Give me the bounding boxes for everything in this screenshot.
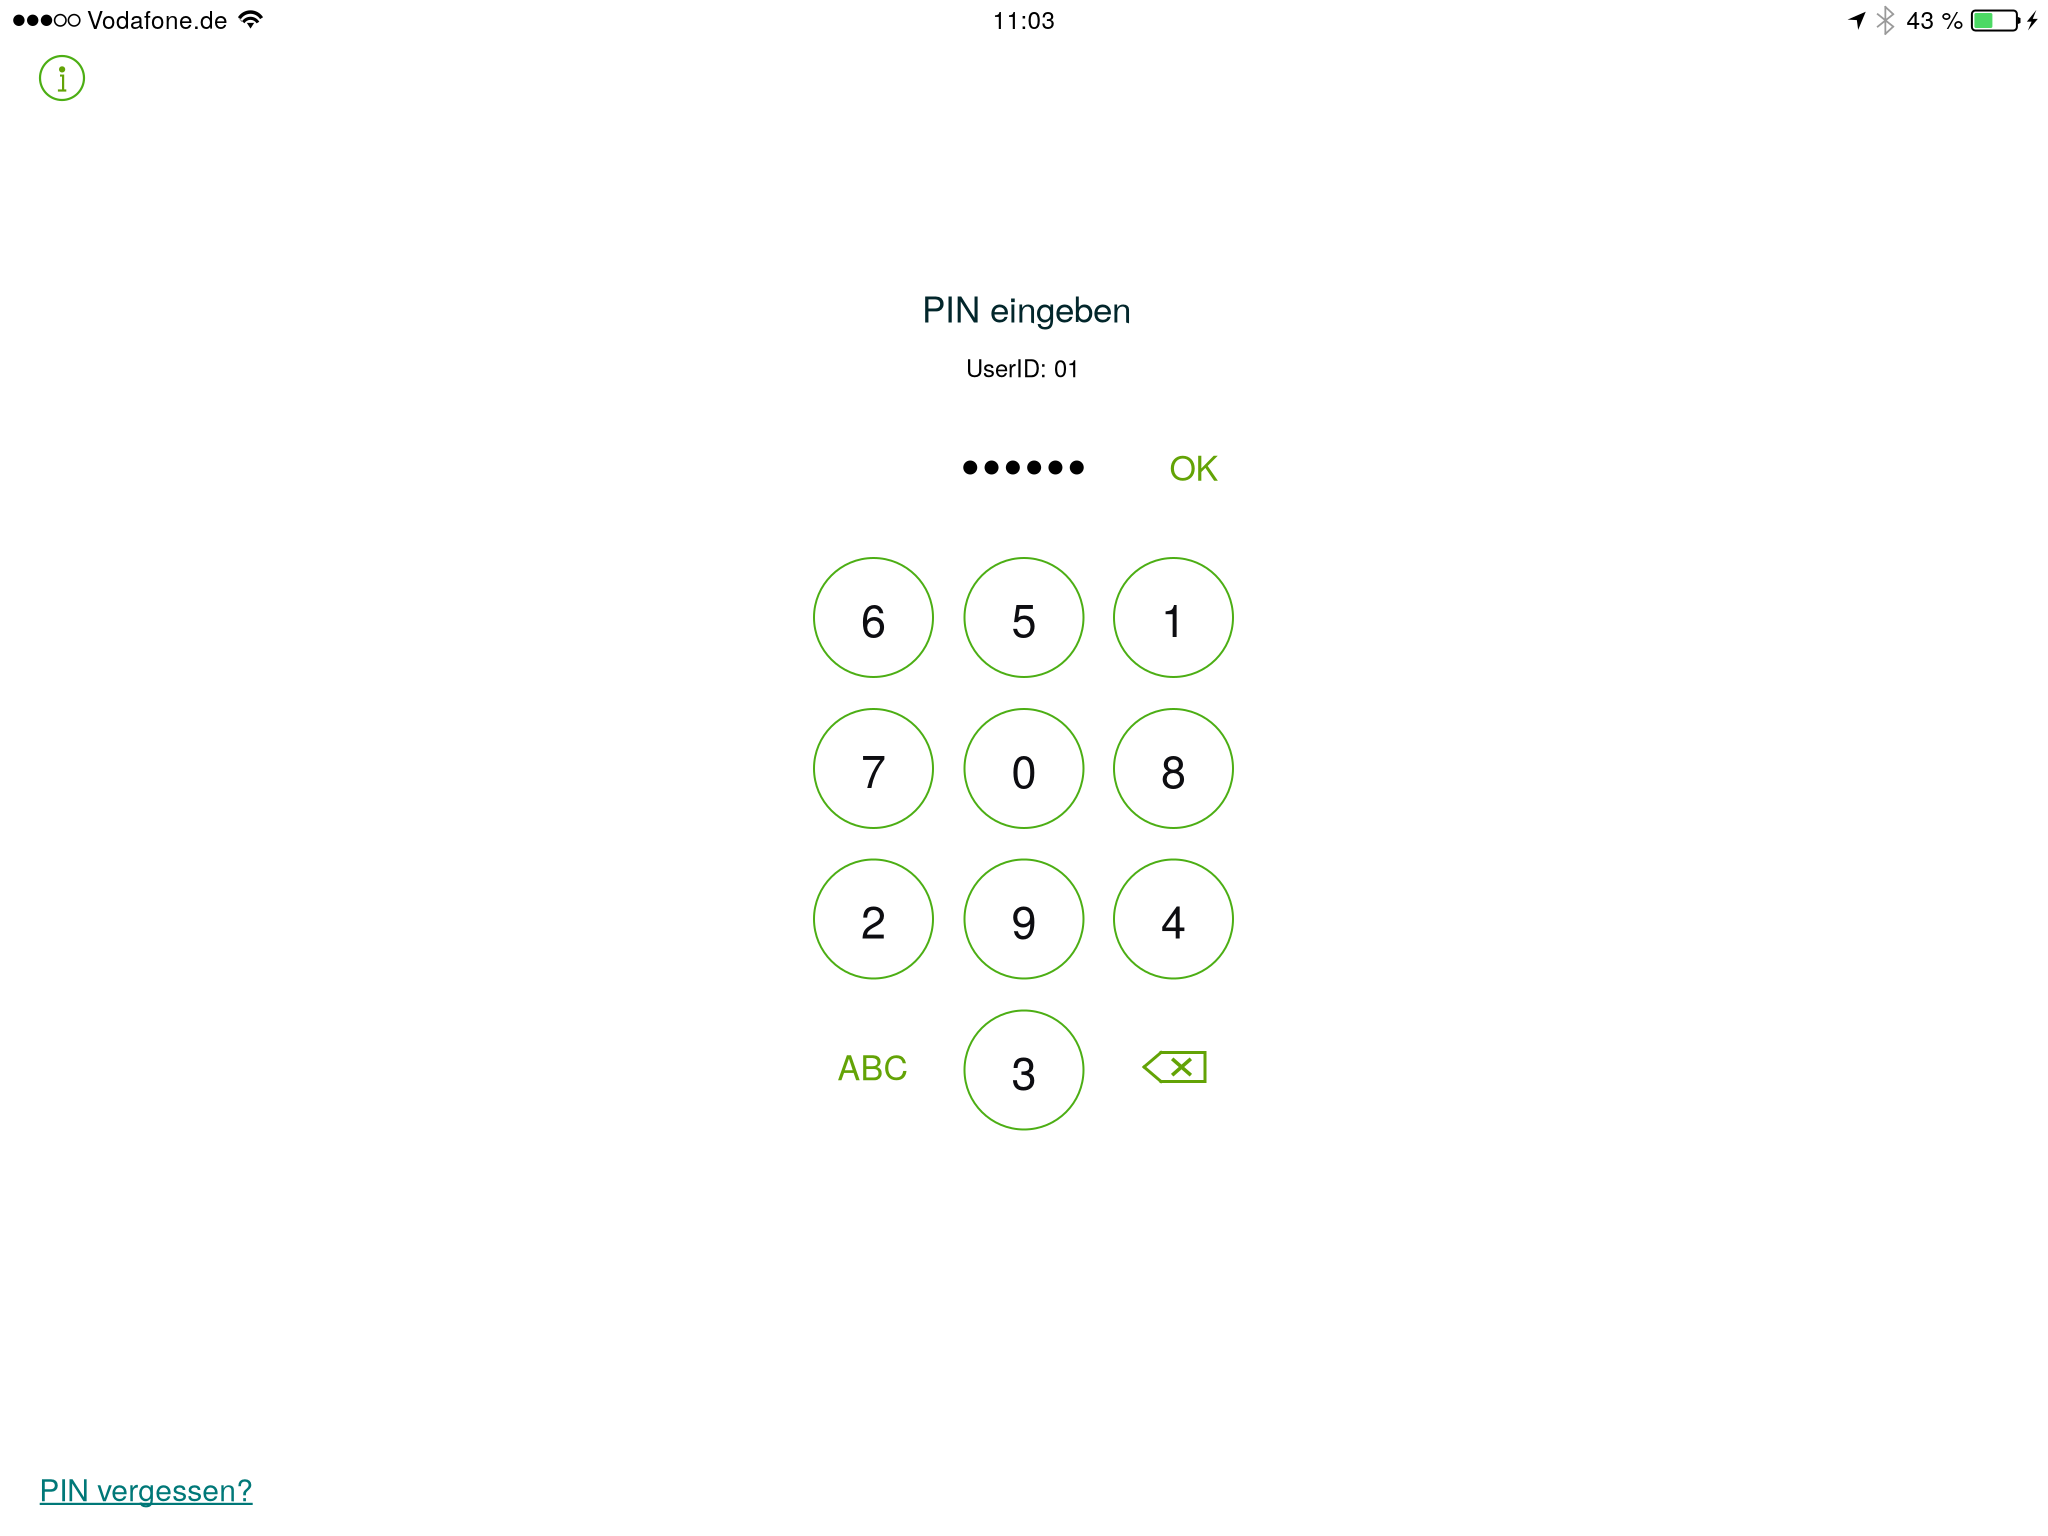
staticText: Vodafone.de [87,1,228,36]
staticText: UserID: 01 [966,350,1080,384]
staticText: 2 [861,887,886,951]
staticText: 7 [861,736,886,801]
staticText: 9 [1011,887,1036,951]
staticText: PIN eingeben [922,282,1131,332]
staticText: 0 [1011,736,1036,801]
staticText: 1 [1161,585,1186,650]
button[interactable]: 8 [1114,709,1233,828]
staticText: 43 % [1906,1,1963,36]
button[interactable]: 2 [814,859,933,978]
button[interactable]: 4 [1114,859,1233,978]
staticText: 11:03 [992,1,1055,36]
staticText: PIN vergessen? [39,1467,253,1510]
button[interactable]: 9 [964,859,1083,978]
staticText: ABC [837,1041,908,1090]
button[interactable]: Delete [1115,1007,1234,1126]
button[interactable]: ABC [813,1006,932,1125]
button[interactable]: 1 [1114,558,1233,677]
button[interactable]: 6 [814,558,933,677]
button[interactable]: 5 [964,558,1083,677]
button[interactable]: OK [1146,428,1242,504]
button[interactable]: 0 [964,709,1083,828]
button[interactable]: PIN vergessen? [39,1451,253,1515]
button[interactable]: 3 [964,1010,1083,1129]
staticText: 4 [1161,887,1186,951]
staticText: OK [1169,442,1218,490]
staticText: 3 [1011,1038,1036,1102]
button[interactable]: 7 [814,709,933,828]
staticText: 8 [1161,736,1186,801]
staticText: 6 [861,585,886,650]
staticText: 5 [1011,585,1036,650]
button[interactable]: Info [40,56,84,100]
